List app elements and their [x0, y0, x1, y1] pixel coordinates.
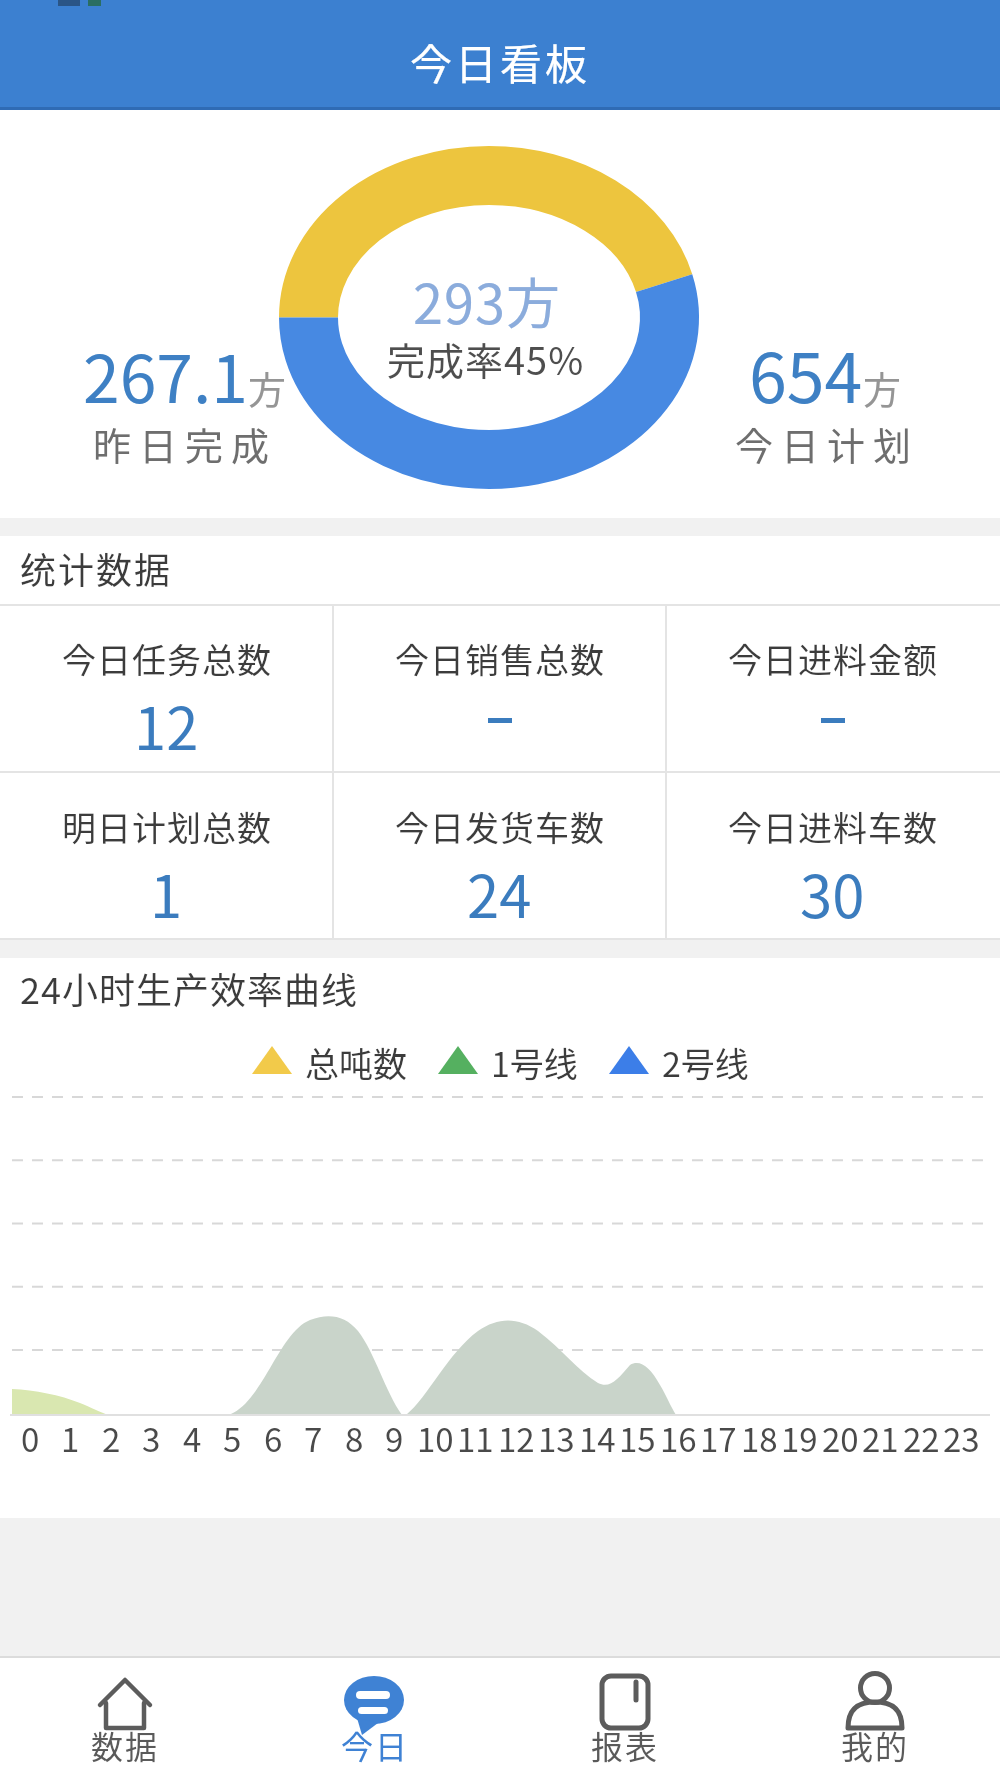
staticText: 9 — [385, 1414, 404, 1462]
staticText: 20 — [822, 1414, 859, 1462]
staticText: 1号线 — [491, 1038, 578, 1082]
staticText: 17 — [700, 1414, 737, 1462]
staticText: 293方 — [413, 261, 561, 339]
button[interactable]: 今日发货车数 — [333, 772, 666, 939]
staticText: 654 — [749, 324, 863, 422]
button[interactable]: 我的 — [750, 1658, 1000, 1778]
staticText: 数据 — [91, 1722, 160, 1764]
button[interactable]: 数据 — [0, 1658, 250, 1778]
button[interactable]: 明日计划总数 — [0, 772, 333, 939]
staticText: 今日销售总数 — [395, 634, 605, 683]
staticText: 24小时生产效率曲线 — [20, 962, 358, 1014]
button[interactable]: 今日看板 — [0, 0, 1000, 110]
staticText: 30 — [800, 851, 865, 925]
staticText: 8 — [345, 1414, 364, 1462]
button[interactable]: 报表 — [500, 1658, 750, 1778]
staticText: 3 — [142, 1414, 161, 1462]
button[interactable]: 今日任务总数 — [0, 604, 333, 771]
staticText: 14 — [579, 1414, 616, 1462]
staticText: 方 — [248, 360, 287, 415]
staticText: 2 — [102, 1414, 121, 1462]
button[interactable]: 今日进料车数 — [666, 772, 999, 939]
button[interactable]: 今日进料金额 — [666, 604, 999, 771]
staticText: 今日 — [341, 1722, 410, 1764]
staticText: 7 — [304, 1414, 323, 1462]
staticText: 完成率45% — [387, 331, 585, 386]
staticText: 明日计划总数 — [62, 802, 272, 851]
staticText: 13 — [538, 1414, 575, 1462]
staticText: 1 — [61, 1414, 80, 1462]
staticText: 0 — [21, 1414, 40, 1462]
staticText: 统计数据 — [20, 542, 173, 594]
staticText: 4 — [183, 1414, 202, 1462]
staticText: 16 — [660, 1414, 697, 1462]
staticText: 23 — [943, 1414, 980, 1462]
staticText: 12 — [498, 1414, 535, 1462]
staticText: 19 — [781, 1414, 818, 1462]
staticText: 11 — [457, 1414, 494, 1462]
staticText: 5 — [223, 1414, 242, 1462]
staticText: 15 — [619, 1414, 656, 1462]
staticText: 昨日完成 — [93, 416, 278, 471]
staticText: 今日任务总数 — [62, 634, 272, 683]
staticText: 22 — [903, 1414, 940, 1462]
staticText: 总吨数 — [305, 1038, 407, 1082]
staticText: 21 — [862, 1414, 899, 1462]
staticText: 24 — [467, 851, 532, 925]
staticText: 1 — [150, 851, 183, 925]
staticText: 267.1 — [83, 326, 248, 422]
staticText: 今日看板 — [410, 31, 591, 92]
button[interactable]: 今日销售总数 — [333, 604, 666, 771]
staticText: 今日进料车数 — [728, 802, 938, 851]
button[interactable]: 今日 — [250, 1658, 500, 1778]
staticText: 12 — [134, 683, 199, 757]
staticText: 10 — [417, 1414, 454, 1462]
staticText: 6 — [264, 1414, 283, 1462]
staticText: 我的 — [841, 1722, 910, 1764]
staticText: 今日计划 — [735, 416, 920, 471]
staticText: 2号线 — [662, 1038, 749, 1082]
staticText: 今日发货车数 — [395, 802, 605, 851]
staticText: 方 — [863, 360, 902, 415]
staticText: 报表 — [591, 1722, 660, 1764]
staticText: 今日进料金额 — [728, 634, 938, 683]
staticText: 18 — [741, 1414, 778, 1462]
